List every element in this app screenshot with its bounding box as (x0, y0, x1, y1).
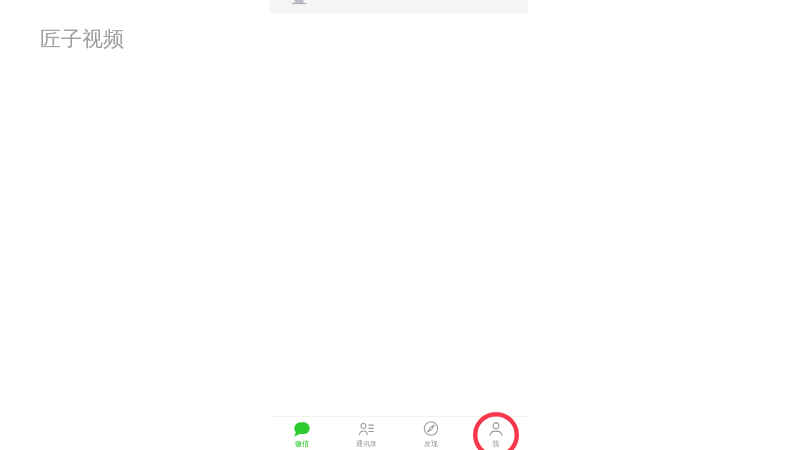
staticText: 发现 (424, 439, 438, 448)
staticText: 通讯录 (356, 439, 377, 448)
button[interactable]: 通讯录 (334, 417, 398, 448)
button[interactable]: 发现 (398, 417, 463, 448)
button[interactable]: 微信 (270, 417, 334, 448)
staticText: 我 (492, 439, 499, 448)
other: 通讯录 (358, 421, 374, 437)
other: 我 (488, 421, 504, 437)
other: 微信 (294, 421, 310, 437)
button[interactable]: 我 (463, 417, 528, 448)
staticText: 微信 (295, 439, 309, 448)
staticText: 匠子视频 (40, 26, 124, 52)
other: 发现 (423, 421, 439, 437)
